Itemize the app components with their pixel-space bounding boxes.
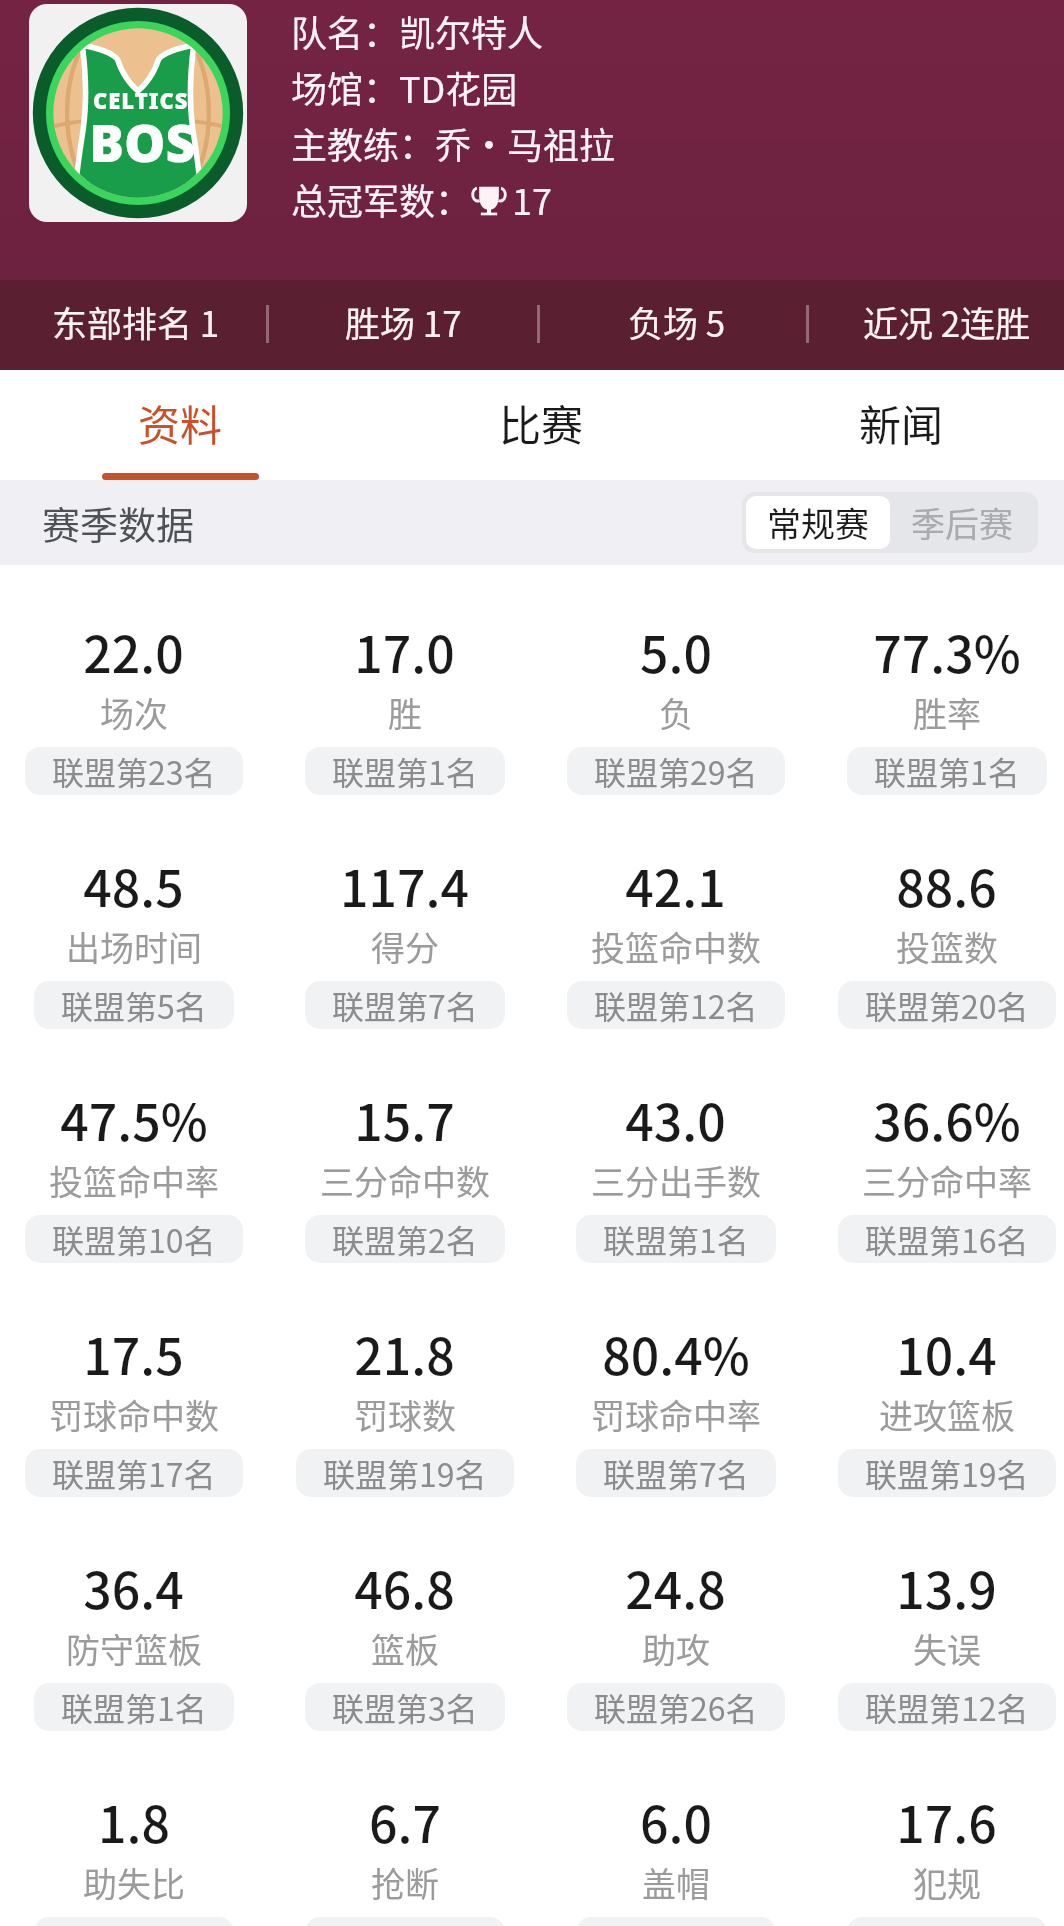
staticText: 盖帽	[642, 1858, 710, 1907]
staticText: 赛季数据	[42, 495, 195, 550]
staticText: 联盟第3名	[332, 1684, 478, 1730]
button[interactable]: 资料	[8, 370, 353, 480]
staticText: 投篮命中数	[591, 922, 761, 971]
staticText: 犯规	[913, 1858, 981, 1907]
staticText: 罚球命中数	[49, 1390, 219, 1439]
staticText: 21.8	[354, 1317, 455, 1389]
staticText: 17.5	[83, 1317, 184, 1389]
staticText: 117.4	[340, 849, 469, 921]
staticText: 胜	[388, 688, 422, 737]
staticText: 联盟第1名	[874, 748, 1020, 794]
button[interactable]: 47.5%	[0, 1033, 269, 1267]
staticText: 联盟第1名	[61, 1684, 207, 1730]
staticText: 季后赛	[911, 498, 1013, 547]
staticText: 助攻	[642, 1624, 710, 1673]
button[interactable]: 球队队徽	[29, 4, 247, 222]
button[interactable]: 比赛	[369, 370, 714, 480]
staticText: 胜率	[913, 688, 981, 737]
staticText: 出场时间	[66, 922, 202, 971]
button[interactable]: 88.6	[811, 799, 1064, 1033]
staticText: 47.5%	[60, 1083, 208, 1155]
button[interactable]: 15.7	[269, 1033, 540, 1267]
button[interactable]: 季后赛	[890, 496, 1034, 549]
button[interactable]: 48.5	[0, 799, 269, 1033]
staticText: 80.4%	[602, 1317, 750, 1389]
button[interactable]: 21.8	[269, 1267, 540, 1501]
staticText: 进攻篮板	[879, 1390, 1015, 1439]
staticText: 三分出手数	[591, 1156, 761, 1205]
staticText: 负	[659, 688, 693, 737]
staticText: 联盟第12名	[865, 1684, 1029, 1730]
staticText: 36.6%	[873, 1083, 1021, 1155]
button[interactable]: 42.1	[540, 799, 811, 1033]
staticText: 17.0	[354, 615, 455, 687]
button[interactable]: 36.6%	[811, 1033, 1064, 1267]
staticText: 42.1	[625, 849, 726, 921]
staticText: 24.8	[625, 1551, 726, 1623]
staticText: 联盟第10名	[52, 1216, 216, 1262]
staticText: 防守篮板	[66, 1624, 202, 1673]
staticText: 联盟第19名	[865, 1450, 1029, 1496]
button[interactable]: 17.6	[811, 1735, 1064, 1926]
staticText: 联盟第20名	[865, 982, 1029, 1028]
button[interactable]: 36.4	[0, 1501, 269, 1735]
button[interactable]: 17.5	[0, 1267, 269, 1501]
button[interactable]: 10.4	[811, 1267, 1064, 1501]
button[interactable]: 近况 2连胜	[811, 276, 1064, 366]
button[interactable]: 东部排名 1	[0, 276, 271, 366]
staticText: 三分命中数	[320, 1156, 490, 1205]
button[interactable]: 负场 5	[541, 276, 812, 366]
staticText: 近况 2连胜	[863, 296, 1031, 347]
button[interactable]: 46.8	[269, 1501, 540, 1735]
staticText: 联盟第5名	[61, 982, 207, 1028]
button[interactable]: 43.0	[540, 1033, 811, 1267]
button[interactable]: 17.0	[269, 565, 540, 799]
staticText: 13.9	[896, 1551, 997, 1623]
button[interactable]: 5.0	[540, 565, 811, 799]
staticText: 助失比	[83, 1858, 185, 1907]
staticText: 联盟第12名	[594, 982, 758, 1028]
staticText: 投篮数	[896, 922, 998, 971]
button[interactable]: 77.3%	[811, 565, 1064, 799]
staticText: 10.4	[896, 1317, 997, 1389]
button[interactable]: 24.8	[540, 1501, 811, 1735]
staticText: 48.5	[83, 849, 184, 921]
staticText: 43.0	[625, 1083, 726, 1155]
button[interactable]: 6.7	[269, 1735, 540, 1926]
button[interactable]: 新闻	[729, 370, 1064, 480]
staticText: 场次	[100, 688, 168, 737]
staticText: 联盟第7名	[332, 982, 478, 1028]
button[interactable]: 6.0	[540, 1735, 811, 1926]
staticText: 新闻	[859, 392, 944, 453]
staticText: 联盟第7名	[603, 1450, 749, 1496]
staticText: 联盟第1名	[603, 1216, 749, 1262]
button[interactable]: 常规赛	[746, 496, 890, 549]
staticText: 队名：凯尔特人	[291, 5, 544, 57]
staticText: 22.0	[83, 615, 184, 687]
staticText: 抢断	[371, 1858, 439, 1907]
button[interactable]: 117.4	[269, 799, 540, 1033]
staticText: 罚球数	[354, 1390, 456, 1439]
staticText: 比赛	[499, 392, 584, 453]
staticText: 联盟第19名	[323, 1450, 487, 1496]
staticText: 联盟第16名	[865, 1216, 1029, 1262]
staticText: 88.6	[896, 849, 997, 921]
staticText: 46.8	[354, 1551, 455, 1623]
button[interactable]: 1.8	[0, 1735, 269, 1926]
staticText: 东部排名 1	[52, 296, 220, 347]
staticText: 联盟第26名	[594, 1684, 758, 1730]
button[interactable]: 22.0	[0, 565, 269, 799]
staticText: 17.6	[896, 1785, 997, 1857]
staticText: 6.0	[640, 1785, 712, 1857]
staticText: 胜场 17	[345, 296, 462, 347]
staticText: CELTICS	[93, 85, 189, 115]
staticText: BOS	[89, 106, 196, 177]
staticText: 联盟第2名	[332, 1216, 478, 1262]
button[interactable]: 80.4%	[540, 1267, 811, 1501]
staticText: 6.7	[369, 1785, 441, 1857]
button[interactable]: 13.9	[811, 1501, 1064, 1735]
button[interactable]: 胜场 17	[268, 276, 539, 366]
staticText: 场馆：TD花园	[291, 61, 518, 113]
